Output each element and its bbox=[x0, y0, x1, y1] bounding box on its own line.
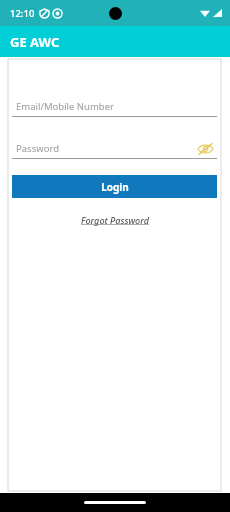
staticText: Password bbox=[16, 142, 59, 155]
staticText: Login bbox=[101, 180, 129, 194]
button[interactable]: Forgot Password bbox=[75, 212, 155, 228]
button[interactable]: Password bbox=[12, 140, 217, 159]
button[interactable]: Login bbox=[12, 175, 217, 198]
staticText: GE AWC bbox=[10, 33, 60, 51]
staticText: Forgot Password bbox=[81, 214, 149, 226]
button[interactable]: Email/Mobile Number bbox=[12, 98, 217, 117]
staticText: 12:10 bbox=[10, 7, 35, 20]
staticText: Email/Mobile Number bbox=[16, 100, 114, 113]
button[interactable]: Show password bbox=[197, 143, 217, 155]
